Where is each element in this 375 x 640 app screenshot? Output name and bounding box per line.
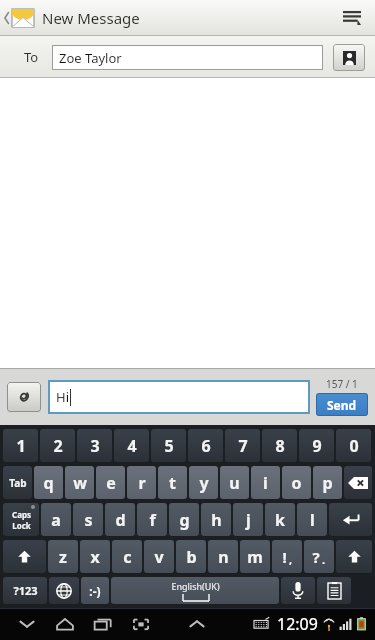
button[interactable]: r: [127, 466, 156, 499]
button[interactable]: Menu: [335, 1, 369, 35]
staticText: i: [263, 472, 268, 494]
staticText: e: [106, 472, 116, 494]
button[interactable]: Hide keyboard: [8, 609, 46, 639]
button[interactable]: [344, 466, 372, 499]
staticText: ?123: [13, 583, 38, 598]
staticText: Tab: [9, 476, 27, 490]
staticText: Lock: [12, 520, 31, 531]
staticText: 157 / 1: [326, 377, 358, 391]
button[interactable]: Expand: [178, 609, 216, 639]
button[interactable]: Recent apps: [84, 609, 122, 639]
staticText: :-): [89, 583, 101, 599]
button[interactable]: e: [96, 466, 125, 499]
staticText: m: [247, 546, 263, 568]
button[interactable]: a: [41, 503, 71, 536]
button[interactable]: Home: [46, 609, 84, 639]
button[interactable]: 3: [77, 429, 112, 462]
button[interactable]: s: [73, 503, 103, 536]
button[interactable]: 9: [299, 429, 334, 462]
button[interactable]: 8: [262, 429, 297, 462]
button[interactable]: Screenshot: [122, 609, 160, 639]
staticText: d: [115, 509, 126, 531]
button[interactable]: h: [201, 503, 231, 536]
button[interactable]: [329, 503, 372, 536]
staticText: 9: [312, 435, 322, 457]
button[interactable]: l: [297, 503, 327, 536]
button[interactable]: k: [265, 503, 295, 536]
button[interactable]: f: [137, 503, 167, 536]
button[interactable]: Contacts: [333, 44, 365, 71]
staticText: p: [322, 472, 333, 494]
staticText: s: [84, 509, 93, 531]
staticText: 6: [201, 435, 211, 457]
button[interactable]: ?123: [3, 577, 47, 604]
button[interactable]: ?: [304, 540, 334, 573]
button[interactable]: z: [48, 540, 78, 573]
staticText: 12:09: [277, 613, 318, 635]
button[interactable]: u: [220, 466, 249, 499]
staticText: l: [310, 509, 315, 531]
staticText: 1: [16, 435, 26, 457]
button[interactable]: !: [272, 540, 302, 573]
button[interactable]: 7: [225, 429, 260, 462]
button[interactable]: Zoe Taylor: [52, 45, 323, 70]
staticText: New Message: [42, 8, 140, 28]
button[interactable]: m: [240, 540, 270, 573]
staticText: To: [10, 48, 52, 66]
staticText: 0: [349, 435, 359, 457]
staticText: z: [59, 546, 67, 568]
button[interactable]: q: [34, 466, 63, 499]
button[interactable]: Back: [4, 2, 34, 34]
staticText: x: [90, 546, 100, 568]
button[interactable]: 2: [40, 429, 75, 462]
staticText: !: [282, 547, 287, 567]
staticText: a: [51, 509, 61, 531]
button[interactable]: :-): [81, 577, 109, 604]
button[interactable]: x: [80, 540, 110, 573]
staticText: y: [199, 472, 209, 494]
staticText: Caps: [12, 509, 31, 520]
button[interactable]: y: [189, 466, 218, 499]
button[interactable]: w: [65, 466, 94, 499]
button[interactable]: g: [169, 503, 199, 536]
staticText: 5: [164, 435, 174, 457]
button[interactable]: v: [144, 540, 174, 573]
staticText: Zoe Taylor: [59, 49, 122, 67]
staticText: h: [211, 509, 222, 531]
button[interactable]: Attach: [7, 382, 41, 412]
button[interactable]: Send: [316, 393, 368, 416]
button[interactable]: d: [105, 503, 135, 536]
staticText: b: [186, 546, 197, 568]
staticText: t: [169, 472, 176, 494]
button[interactable]: [49, 577, 79, 604]
button[interactable]: Caps: [3, 503, 39, 536]
button[interactable]: j: [233, 503, 263, 536]
button[interactable]: 5: [151, 429, 186, 462]
staticText: English(UK): [171, 580, 220, 592]
button[interactable]: [3, 540, 46, 573]
staticText: g: [179, 509, 190, 531]
button[interactable]: t: [158, 466, 187, 499]
button[interactable]: 4: [114, 429, 149, 462]
button[interactable]: c: [112, 540, 142, 573]
staticText: .: [322, 552, 326, 567]
button[interactable]: o: [282, 466, 311, 499]
staticText: f: [149, 509, 156, 531]
button[interactable]: 1: [3, 429, 38, 462]
button[interactable]: b: [176, 540, 206, 573]
button[interactable]: n: [208, 540, 238, 573]
staticText: Hi: [56, 388, 69, 406]
button[interactable]: i: [251, 466, 280, 499]
button[interactable]: 6: [188, 429, 223, 462]
button[interactable]: [336, 540, 372, 573]
button[interactable]: Tab: [3, 466, 32, 499]
button[interactable]: English(UK): [111, 577, 279, 604]
button[interactable]: p: [313, 466, 342, 499]
staticText: ?: [312, 547, 320, 567]
button[interactable]: 0: [336, 429, 371, 462]
button[interactable]: [317, 577, 351, 604]
button[interactable]: [281, 577, 315, 604]
staticText: c: [123, 546, 132, 568]
button[interactable]: Hi: [48, 380, 310, 414]
staticText: v: [154, 546, 164, 568]
